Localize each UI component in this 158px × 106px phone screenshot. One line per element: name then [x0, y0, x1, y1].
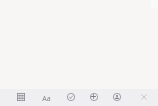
button[interactable]: Close toolbar: [136, 89, 152, 105]
button[interactable]: Account: [109, 89, 125, 105]
staticText: Aa: [42, 94, 51, 104]
button[interactable]: Insert: [86, 89, 102, 105]
button[interactable]: Insert table: [13, 89, 29, 105]
button[interactable]: Checklist: [63, 89, 79, 105]
button[interactable]: Text formatting: [38, 89, 54, 105]
